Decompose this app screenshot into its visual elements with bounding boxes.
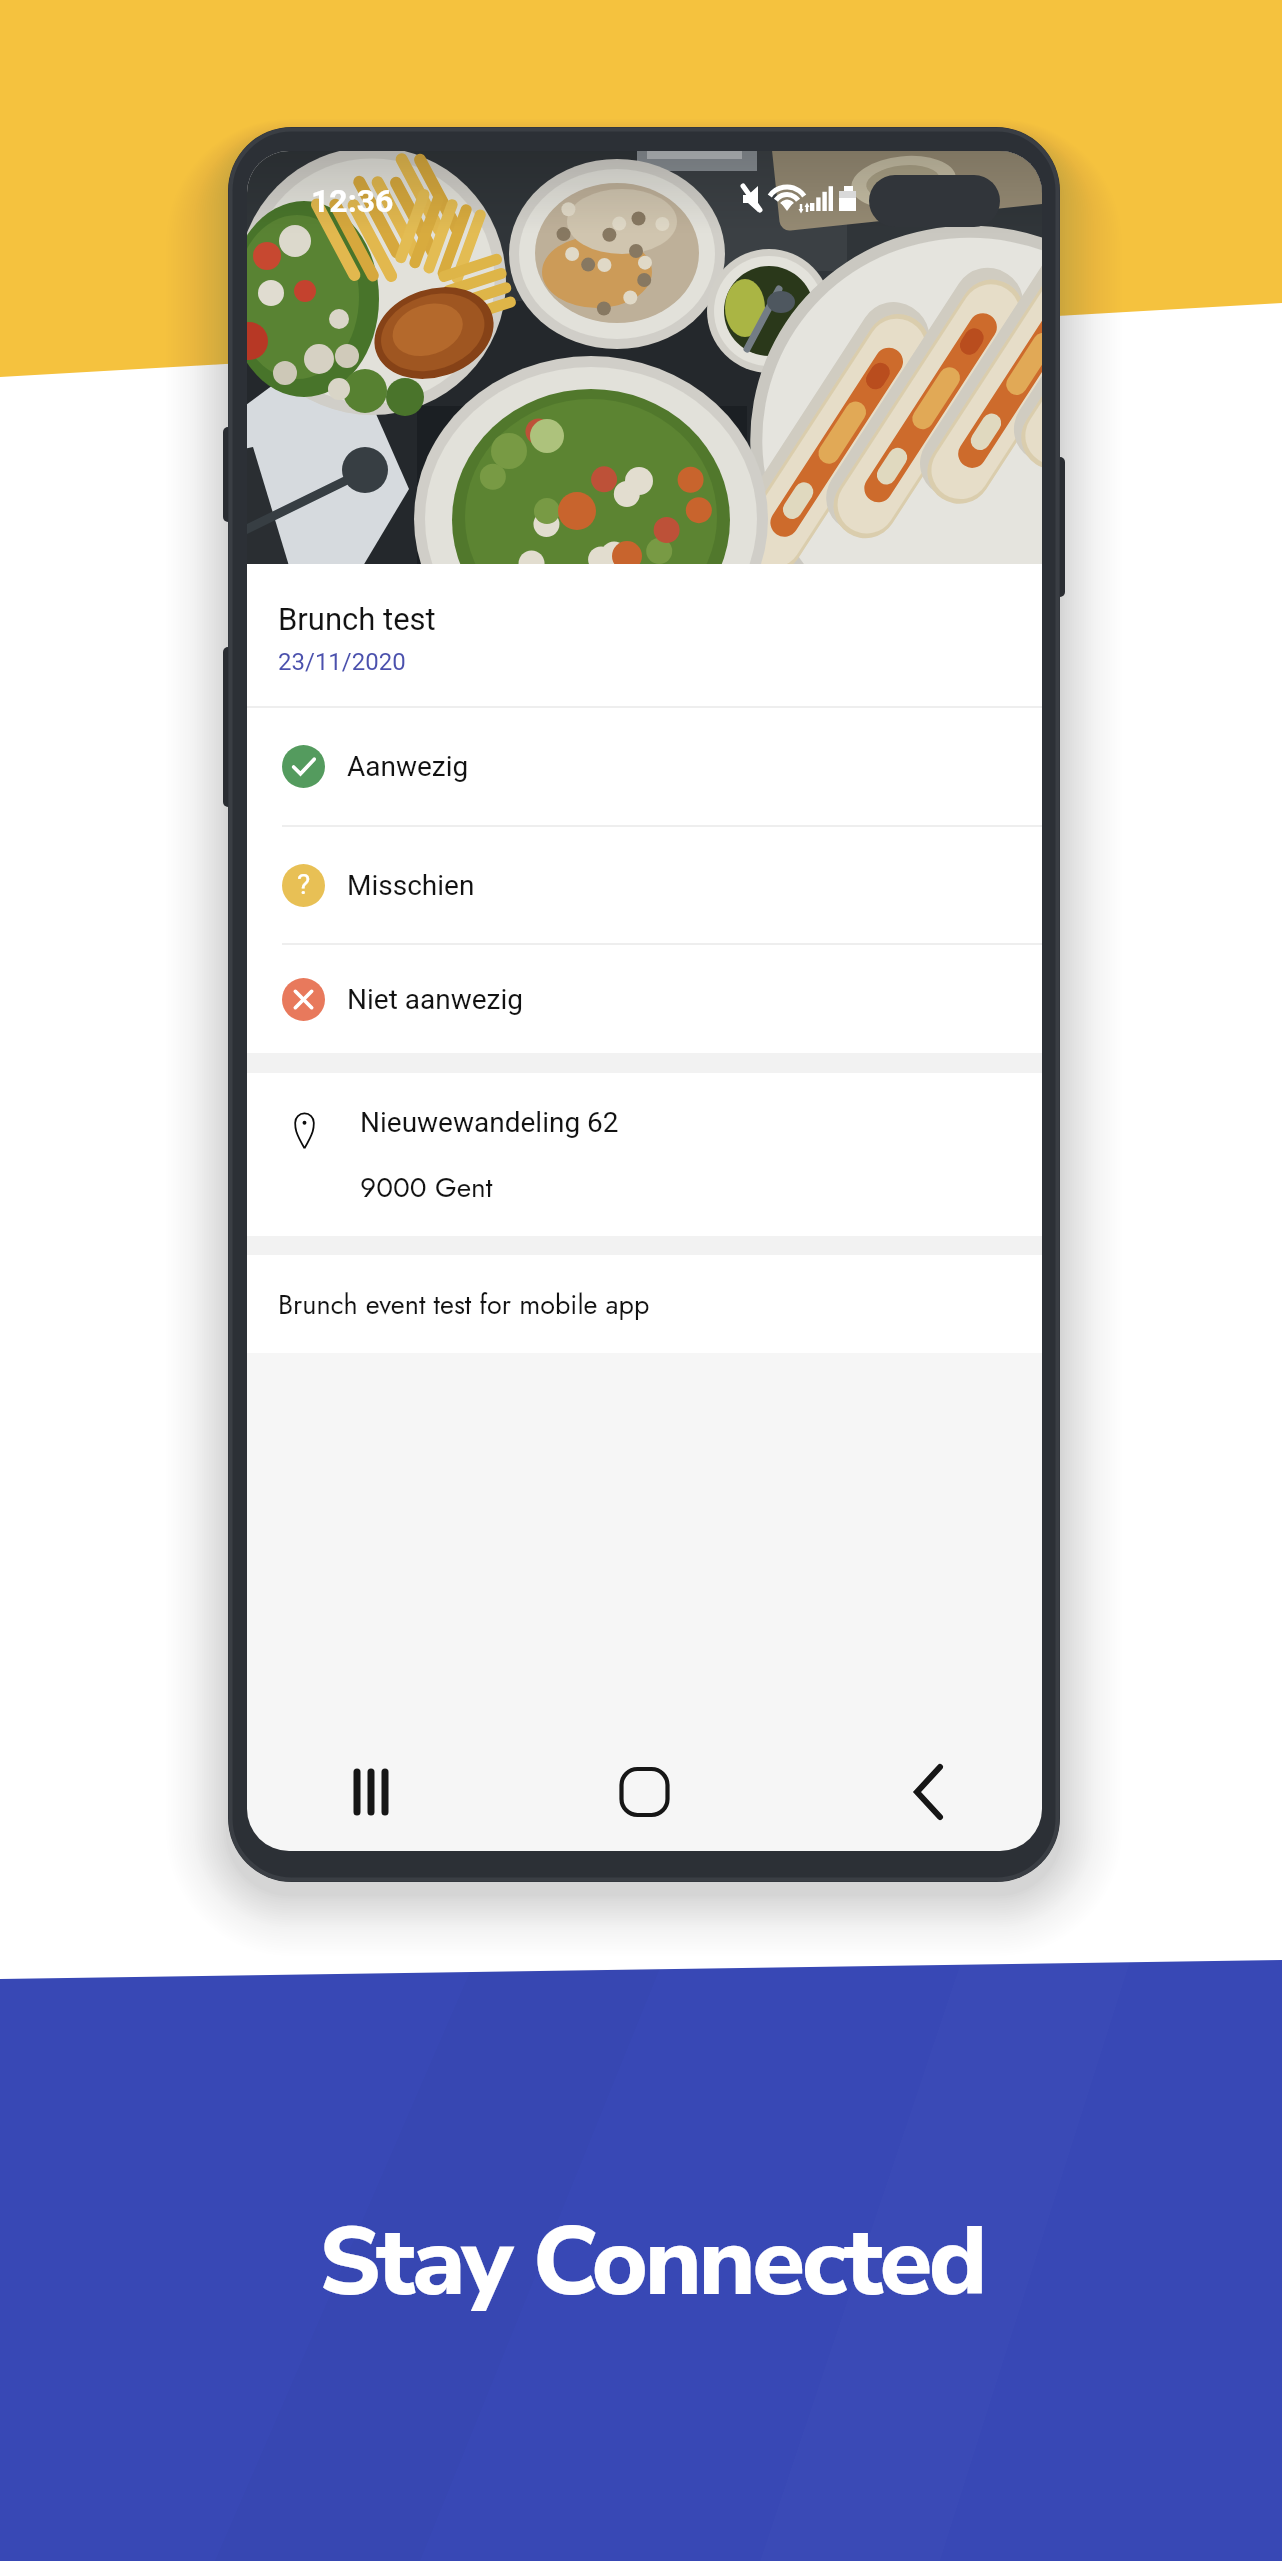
staticText: 9000 Gent [360, 1167, 493, 1207]
button[interactable]: Aanwezig [247, 708, 1042, 825]
staticText: Aanwezig [347, 750, 469, 783]
staticText: 23/11/2020 [278, 648, 406, 676]
button[interactable]: Niet aanwezig [247, 945, 1042, 1053]
button[interactable]: Home [512, 1733, 777, 1851]
button[interactable]: Back [777, 1733, 1042, 1851]
staticText: Brunch test [278, 601, 436, 637]
staticText: Misschien [347, 869, 475, 902]
staticText: Niet aanwezig [347, 983, 523, 1016]
staticText: 12:36 [311, 182, 394, 220]
staticText: Nieuwewandeling 62 [360, 1106, 619, 1139]
staticText: ? [297, 868, 311, 901]
staticText: Brunch event test for mobile app [278, 1285, 650, 1324]
button[interactable]: ? [247, 827, 1042, 943]
button[interactable]: Recent apps [247, 1733, 512, 1851]
button[interactable]: Nieuwewandeling 62 [247, 1073, 1042, 1236]
staticText: Stay Connected [319, 2197, 984, 2327]
